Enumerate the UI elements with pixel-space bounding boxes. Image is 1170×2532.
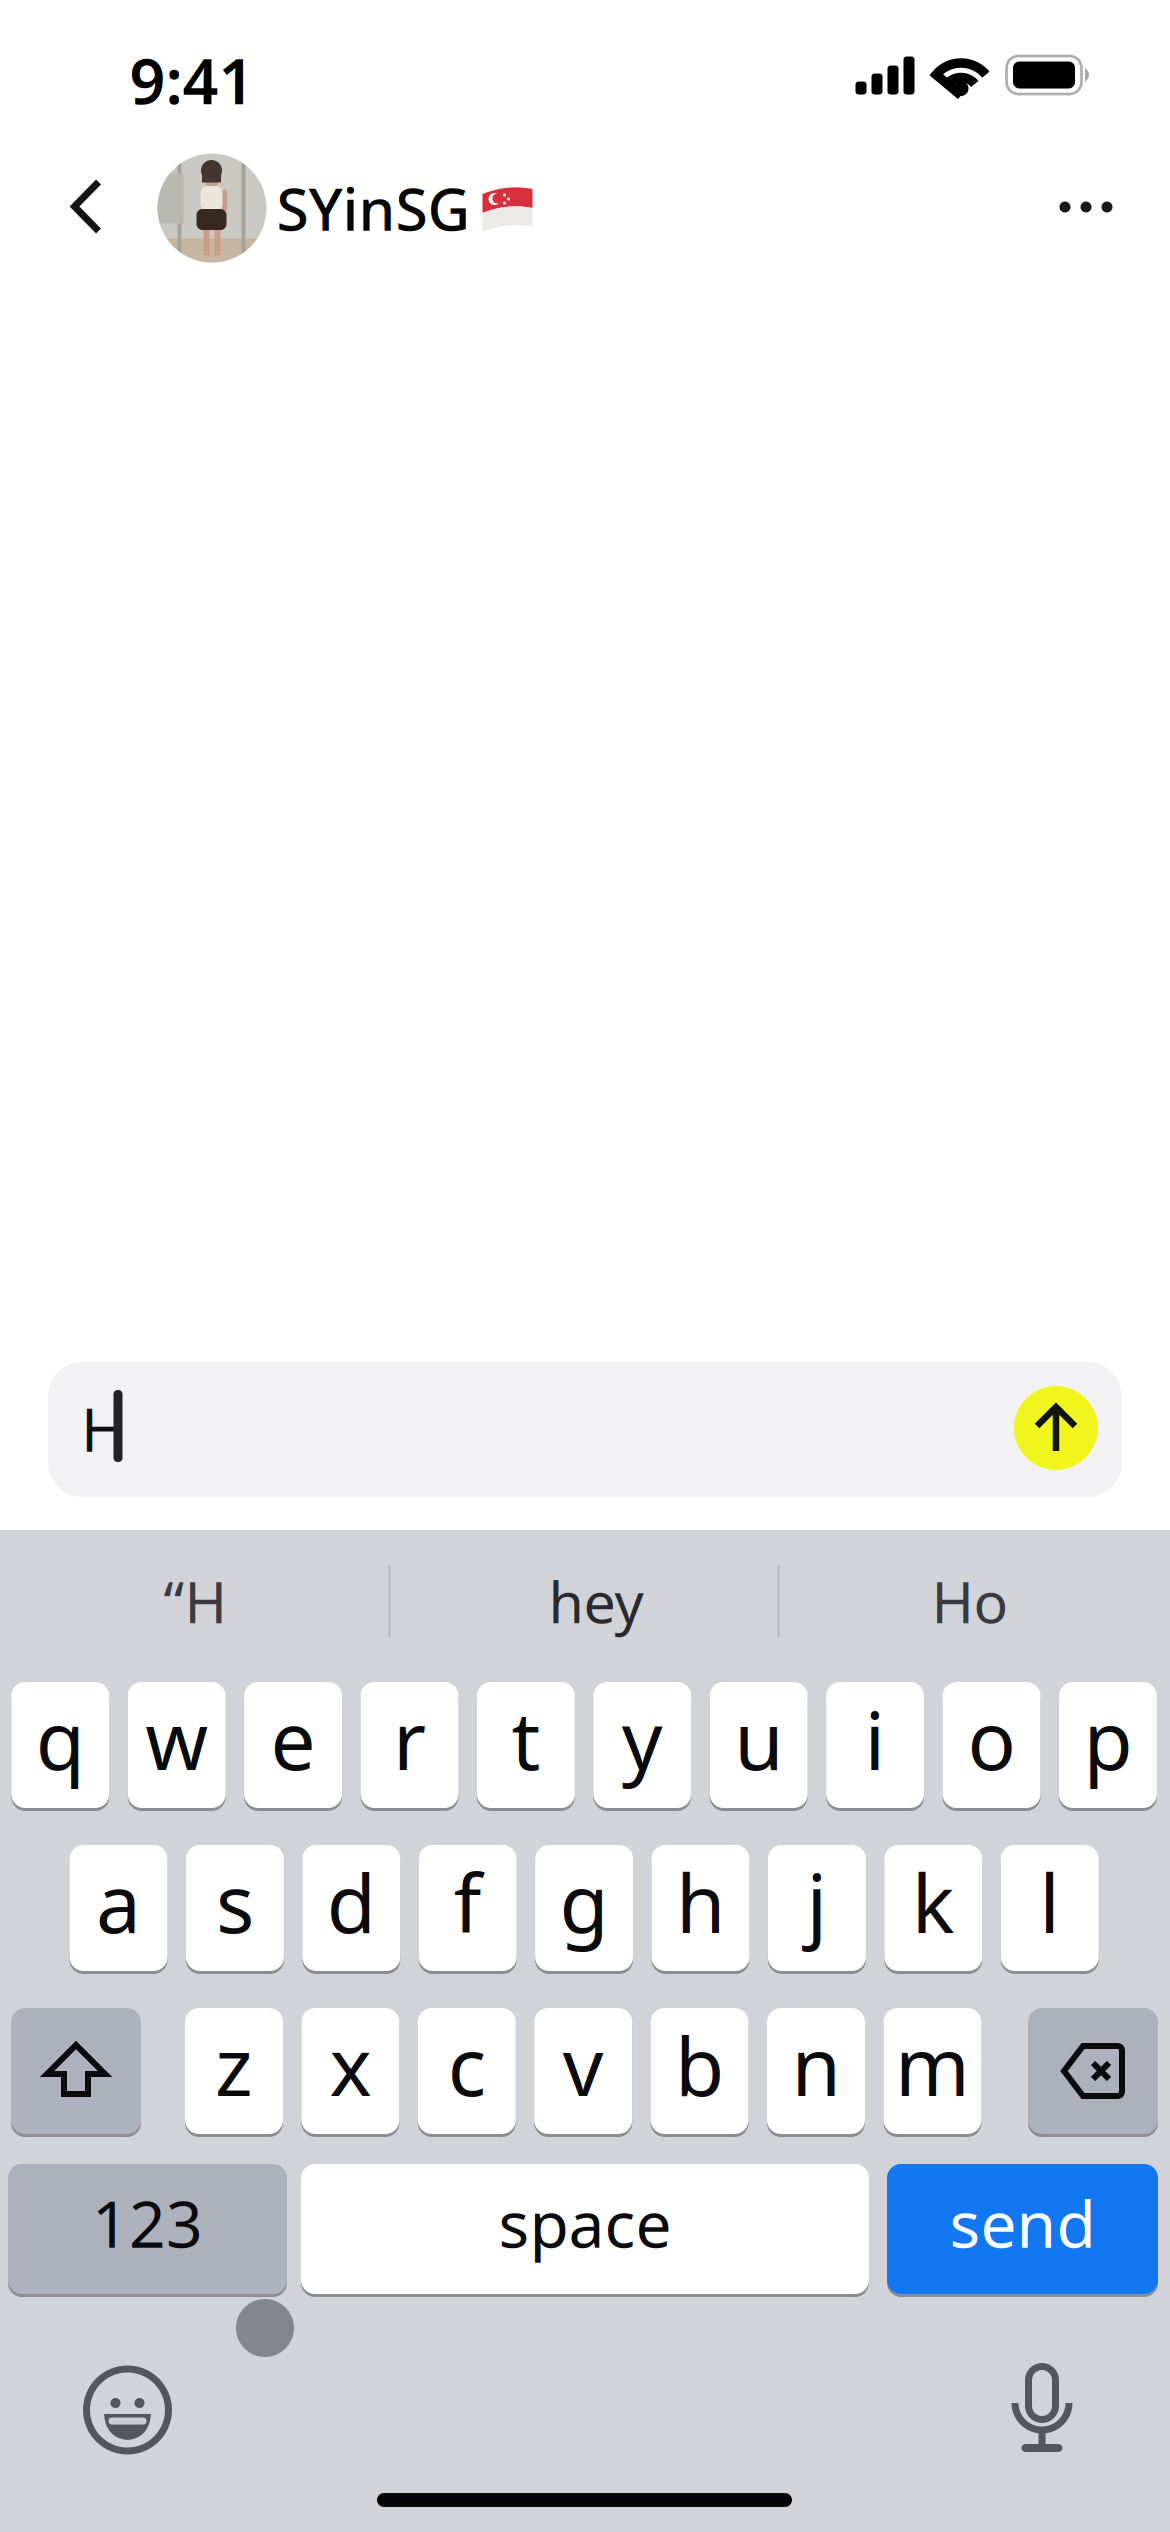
button[interactable]: s [186, 1843, 284, 1973]
button[interactable] [993, 2350, 1091, 2458]
staticText: h [676, 1849, 725, 1955]
staticText: z [215, 2012, 253, 2118]
staticText: w [145, 1686, 208, 1792]
staticText: n [791, 2012, 840, 2118]
staticText: d [327, 1849, 376, 1955]
button[interactable]: m [883, 2006, 981, 2136]
button[interactable] [1014, 1386, 1098, 1470]
staticText: e [271, 1686, 316, 1792]
button[interactable]: SYinSG [157, 153, 534, 262]
button[interactable]: j [768, 1843, 866, 1973]
staticText: x [329, 2012, 371, 2118]
staticText: t [511, 1686, 540, 1792]
button[interactable] [70, 178, 103, 235]
button[interactable]: w [128, 1680, 226, 1810]
staticText: a [96, 1849, 141, 1955]
staticText: r [393, 1686, 426, 1792]
staticText: k [912, 1849, 955, 1955]
button[interactable]: 123 [8, 2162, 287, 2296]
button[interactable]: n [767, 2006, 865, 2136]
button[interactable]: Ho [780, 1531, 1160, 1671]
button[interactable]: q [11, 1680, 109, 1810]
button[interactable]: d [302, 1843, 400, 1973]
button[interactable]: hey [406, 1531, 786, 1671]
staticText: g [560, 1849, 609, 1955]
button[interactable]: t [477, 1680, 575, 1810]
staticText: hey [548, 1563, 643, 1639]
button[interactable]: “H [5, 1531, 385, 1671]
staticText: l [1039, 1849, 1060, 1955]
button[interactable]: space [301, 2162, 869, 2296]
staticText: b [675, 2012, 724, 2118]
button[interactable] [78, 2361, 176, 2459]
button[interactable]: h [651, 1843, 749, 1973]
staticText: Ho [931, 1563, 1008, 1639]
staticText: u [734, 1686, 783, 1792]
button[interactable]: g [535, 1843, 633, 1973]
staticText: j [806, 1849, 827, 1955]
staticText: SYinSG [276, 169, 470, 247]
staticText: y [622, 1686, 663, 1792]
staticText: f [454, 1849, 482, 1955]
button[interactable]: e [244, 1680, 342, 1810]
button[interactable]: f [419, 1843, 517, 1973]
staticText: H [81, 1389, 125, 1468]
button[interactable]: x [301, 2006, 399, 2136]
staticText: m [895, 2012, 970, 2118]
button[interactable]: i [826, 1680, 924, 1810]
button[interactable]: b [651, 2006, 749, 2136]
button[interactable]: p [1059, 1680, 1157, 1810]
button[interactable]: v [534, 2006, 632, 2136]
staticText: i [865, 1686, 886, 1792]
button[interactable] [1028, 2006, 1158, 2136]
button[interactable]: y [593, 1680, 691, 1810]
button[interactable]: r [360, 1680, 458, 1810]
button[interactable]: l [1001, 1843, 1099, 1973]
button[interactable]: z [185, 2006, 283, 2136]
staticText: 123 [92, 2180, 203, 2265]
staticText: q [36, 1686, 85, 1792]
button[interactable]: H [48, 1362, 1122, 1497]
button[interactable] [11, 2006, 141, 2136]
staticText: send [949, 2180, 1095, 2265]
staticText: 9:41 [129, 38, 254, 122]
staticText: s [216, 1849, 254, 1955]
staticText: space [498, 2180, 671, 2265]
button[interactable]: a [69, 1843, 167, 1973]
button[interactable]: c [418, 2006, 516, 2136]
button[interactable]: u [710, 1680, 808, 1810]
button[interactable]: o [942, 1680, 1040, 1810]
button[interactable]: k [884, 1843, 982, 1973]
button[interactable] [1046, 177, 1126, 237]
staticText: “H [163, 1563, 226, 1639]
staticText: o [967, 1686, 1015, 1792]
button[interactable]: send [887, 2162, 1158, 2296]
staticText: c [448, 2012, 486, 2118]
staticText: v [563, 2012, 604, 2118]
staticText: p [1083, 1686, 1132, 1792]
